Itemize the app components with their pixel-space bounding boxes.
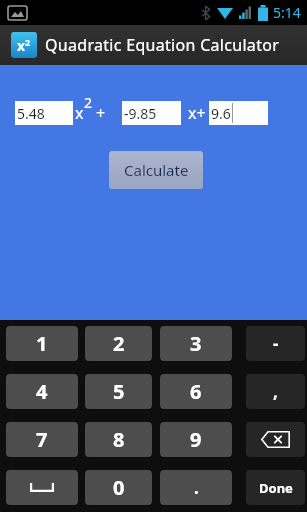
button[interactable]: , — [246, 374, 305, 409]
button[interactable]: 7 — [6, 422, 78, 457]
button[interactable]: 3 — [160, 326, 232, 361]
button[interactable]: - — [246, 326, 305, 361]
button[interactable] — [6, 470, 78, 505]
staticText: 0 — [113, 474, 125, 501]
staticText: 7 — [36, 426, 48, 453]
staticText: 9.6 — [211, 104, 231, 123]
button[interactable]: 1 — [6, 326, 78, 361]
staticText: - — [273, 332, 279, 355]
staticText: -9.85 — [124, 104, 157, 123]
staticText: 9 — [190, 426, 202, 453]
button[interactable]: 0 — [85, 470, 152, 505]
staticText: x2 — [17, 36, 31, 55]
button[interactable]: 2 — [85, 326, 152, 361]
staticText: 5.48 — [17, 104, 45, 123]
button[interactable]: . — [160, 470, 232, 505]
button[interactable]: 9.6 — [209, 101, 268, 125]
button[interactable]: 5 — [85, 374, 152, 409]
staticText: Calculate — [124, 160, 189, 180]
staticText: 8 — [113, 426, 125, 453]
staticText: x+ — [188, 102, 206, 124]
staticText: 5 — [113, 378, 125, 405]
button[interactable]: 8 — [85, 422, 152, 457]
staticText: Done — [259, 479, 293, 497]
button[interactable] — [246, 422, 305, 457]
staticText: . — [194, 476, 199, 499]
staticText: Quadratic Equation Calculator — [45, 34, 280, 56]
button[interactable]: 5.48 — [15, 101, 73, 125]
button[interactable]: 6 — [160, 374, 232, 409]
staticText: 6 — [190, 378, 202, 405]
staticText: 3 — [190, 330, 202, 357]
staticText: 1 — [36, 330, 48, 357]
button[interactable]: Calculate — [109, 151, 203, 189]
button[interactable]: 9 — [160, 422, 232, 457]
staticText: 2 — [113, 330, 125, 357]
staticText: x — [75, 102, 84, 124]
staticText: 5:14 — [273, 3, 301, 22]
button[interactable]: -9.85 — [122, 101, 181, 125]
staticText: , — [273, 380, 278, 403]
button[interactable]: 4 — [6, 374, 78, 409]
staticText: 2 — [84, 93, 93, 112]
button[interactable]: Done — [246, 470, 305, 505]
staticText: 4 — [36, 378, 48, 405]
staticText: + — [96, 102, 106, 124]
